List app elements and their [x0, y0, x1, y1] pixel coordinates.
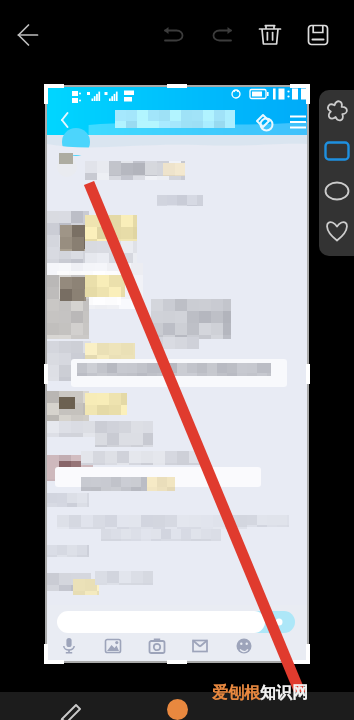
button[interactable]: Freeform shape	[319, 91, 354, 131]
button[interactable]: Heart shape	[319, 211, 354, 251]
button[interactable]: Save	[295, 12, 341, 58]
button[interactable]: Ellipse shape	[319, 171, 354, 211]
button[interactable]: Redo	[199, 12, 245, 58]
button[interactable]: Back	[5, 12, 51, 58]
button[interactable]: Delete	[247, 12, 293, 58]
staticText: 知识网	[260, 683, 308, 703]
button[interactable]: Undo	[151, 12, 197, 58]
button[interactable]: Color	[163, 695, 191, 720]
staticText: 爱刨根	[212, 683, 260, 703]
button[interactable]: Brush	[52, 692, 90, 720]
button[interactable]: Rectangle shape	[319, 131, 354, 171]
